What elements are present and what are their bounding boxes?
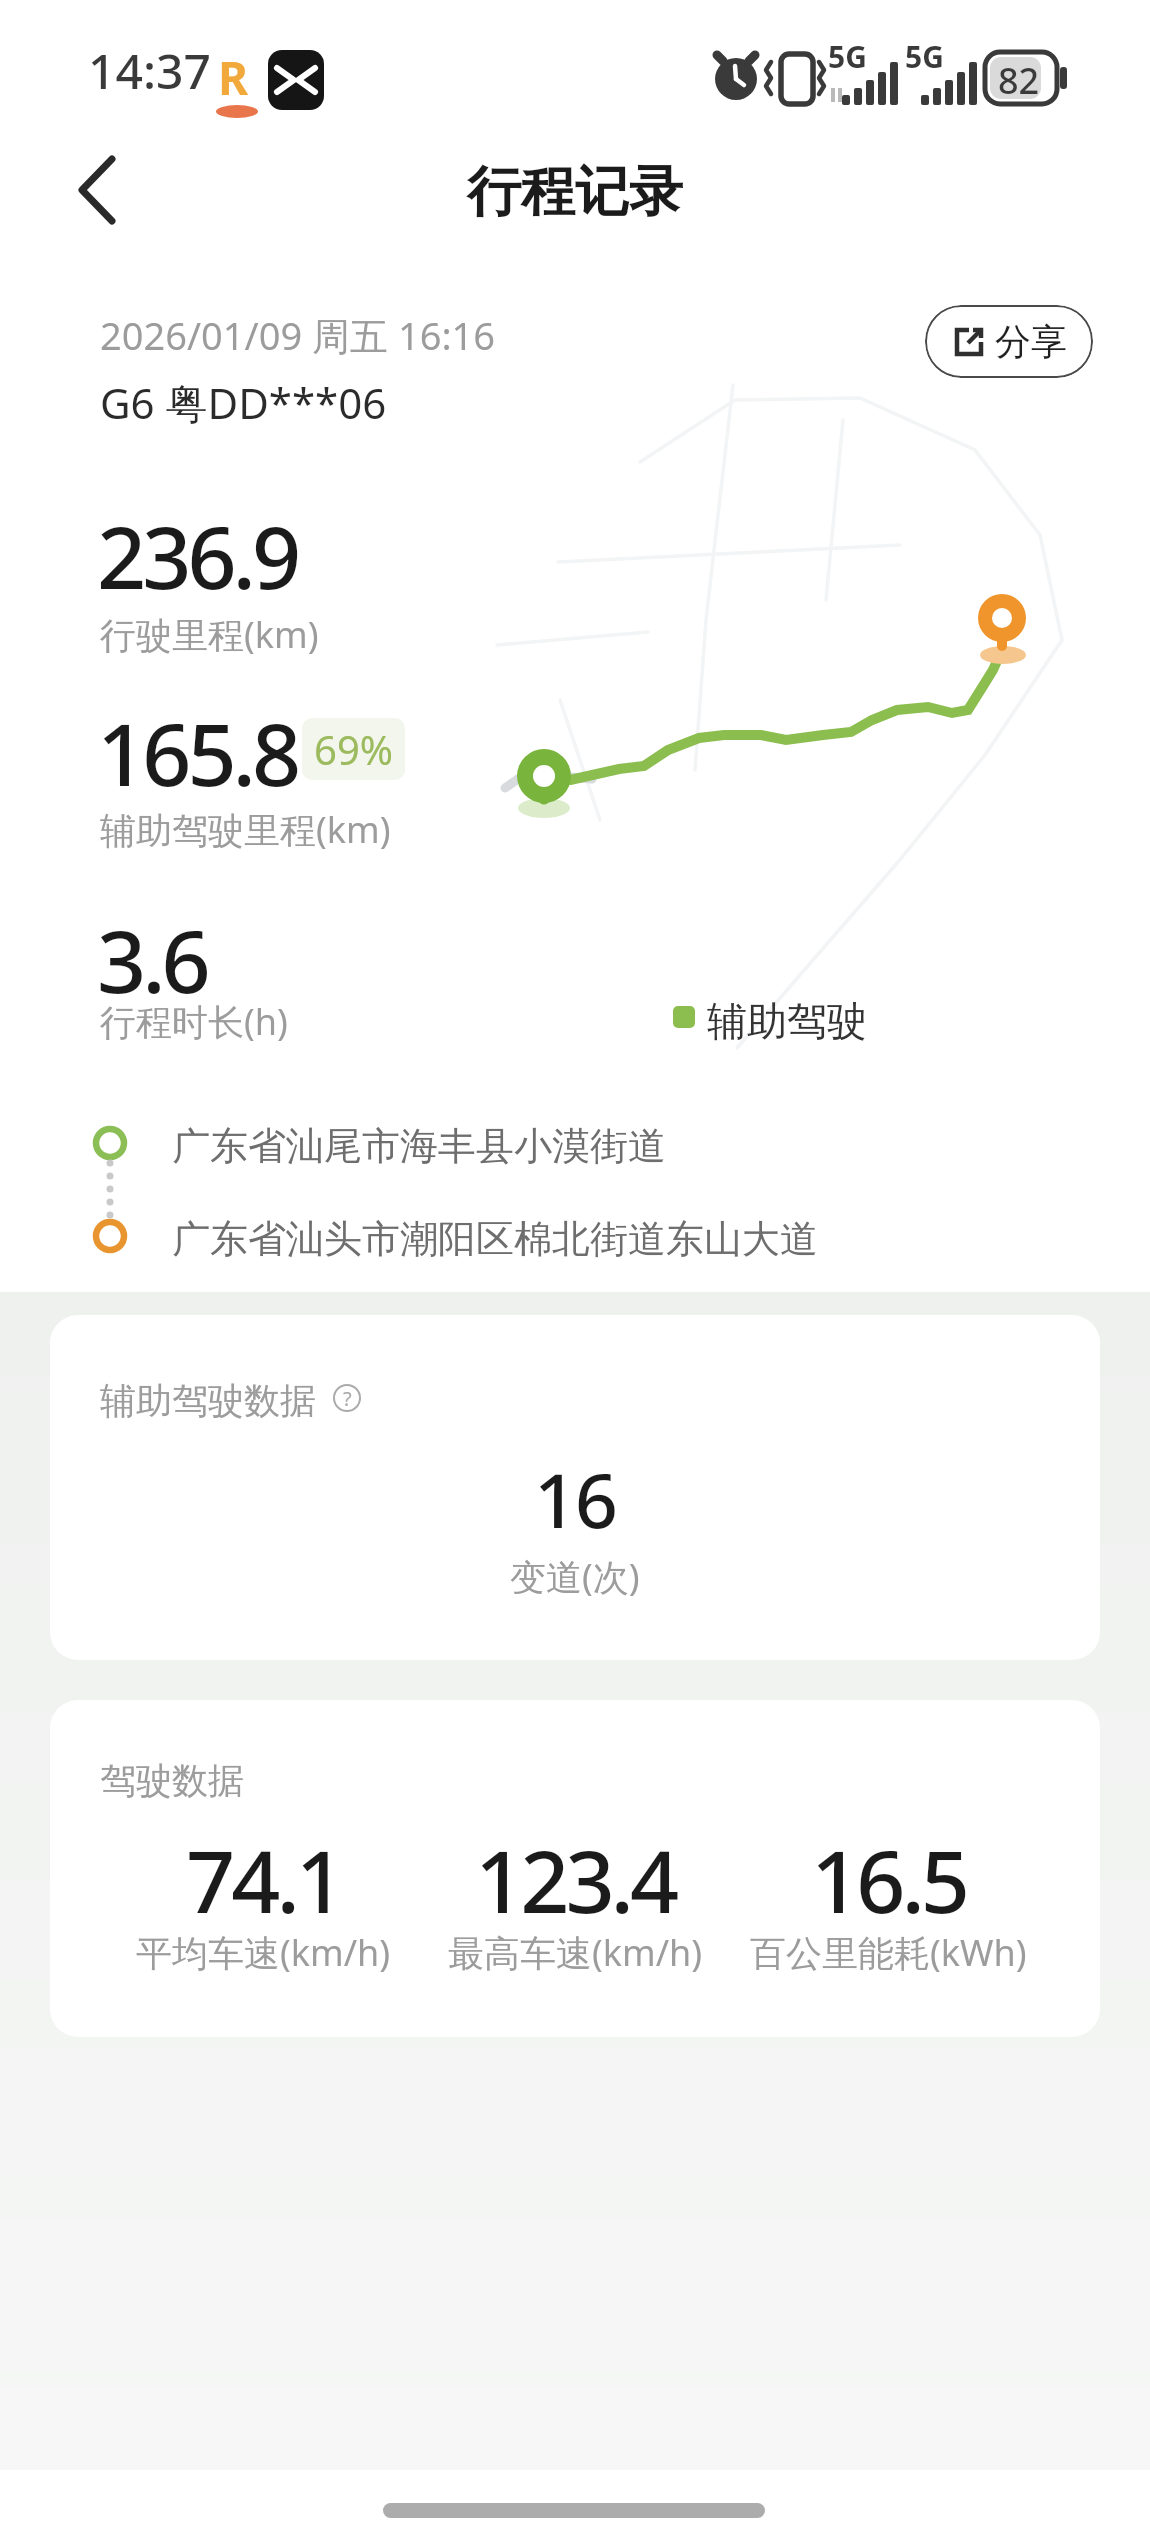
staticText: 16 [534, 1448, 616, 1550]
staticText: 16.5 [811, 1821, 966, 1938]
staticText: 广东省汕头市潮阳区棉北街道东山大道 [172, 1215, 818, 1263]
staticText: 3.6 [97, 901, 207, 1018]
staticText: 123.4 [475, 1821, 676, 1938]
staticText: 2026/01/09 周五 16:16 [100, 309, 496, 361]
staticText: 辅助驾驶数据 [100, 1378, 316, 1423]
button[interactable] [50, 1315, 1100, 1660]
staticText: 82 [998, 56, 1040, 105]
staticText: 69% [314, 722, 393, 776]
staticText: 驾驶数据 [100, 1758, 244, 1803]
staticText: R [218, 46, 249, 109]
staticText: ? [343, 1385, 352, 1412]
staticText: 分享 [995, 319, 1067, 364]
staticText: 行程时长(h) [100, 997, 288, 1046]
staticText: 行程记录 [467, 158, 683, 226]
staticText: 辅助驾驶里程(km) [100, 805, 391, 854]
staticText: 5G [905, 36, 944, 77]
button[interactable] [50, 1700, 1100, 2037]
staticText: G6 粤DD***06 [100, 374, 387, 431]
staticText: 百公里能耗(kWh) [750, 1928, 1027, 1977]
staticText: 最高车速(km/h) [448, 1928, 703, 1977]
staticText: 165.8 [97, 694, 298, 811]
staticText: 辅助驾驶 [707, 996, 867, 1046]
button[interactable] [78, 155, 118, 225]
staticText: 平均车速(km/h) [136, 1928, 391, 1977]
staticText: 74.1 [186, 1821, 341, 1938]
staticText: 14:37 [88, 38, 211, 103]
staticText: 236.9 [97, 497, 298, 614]
staticText: 行驶里程(km) [100, 610, 319, 659]
button[interactable]: 分享 [925, 305, 1093, 378]
staticText: 5G [828, 36, 867, 77]
staticText: 变道(次) [510, 1552, 640, 1601]
staticText: 广东省汕尾市海丰县小漠街道 [172, 1122, 666, 1170]
